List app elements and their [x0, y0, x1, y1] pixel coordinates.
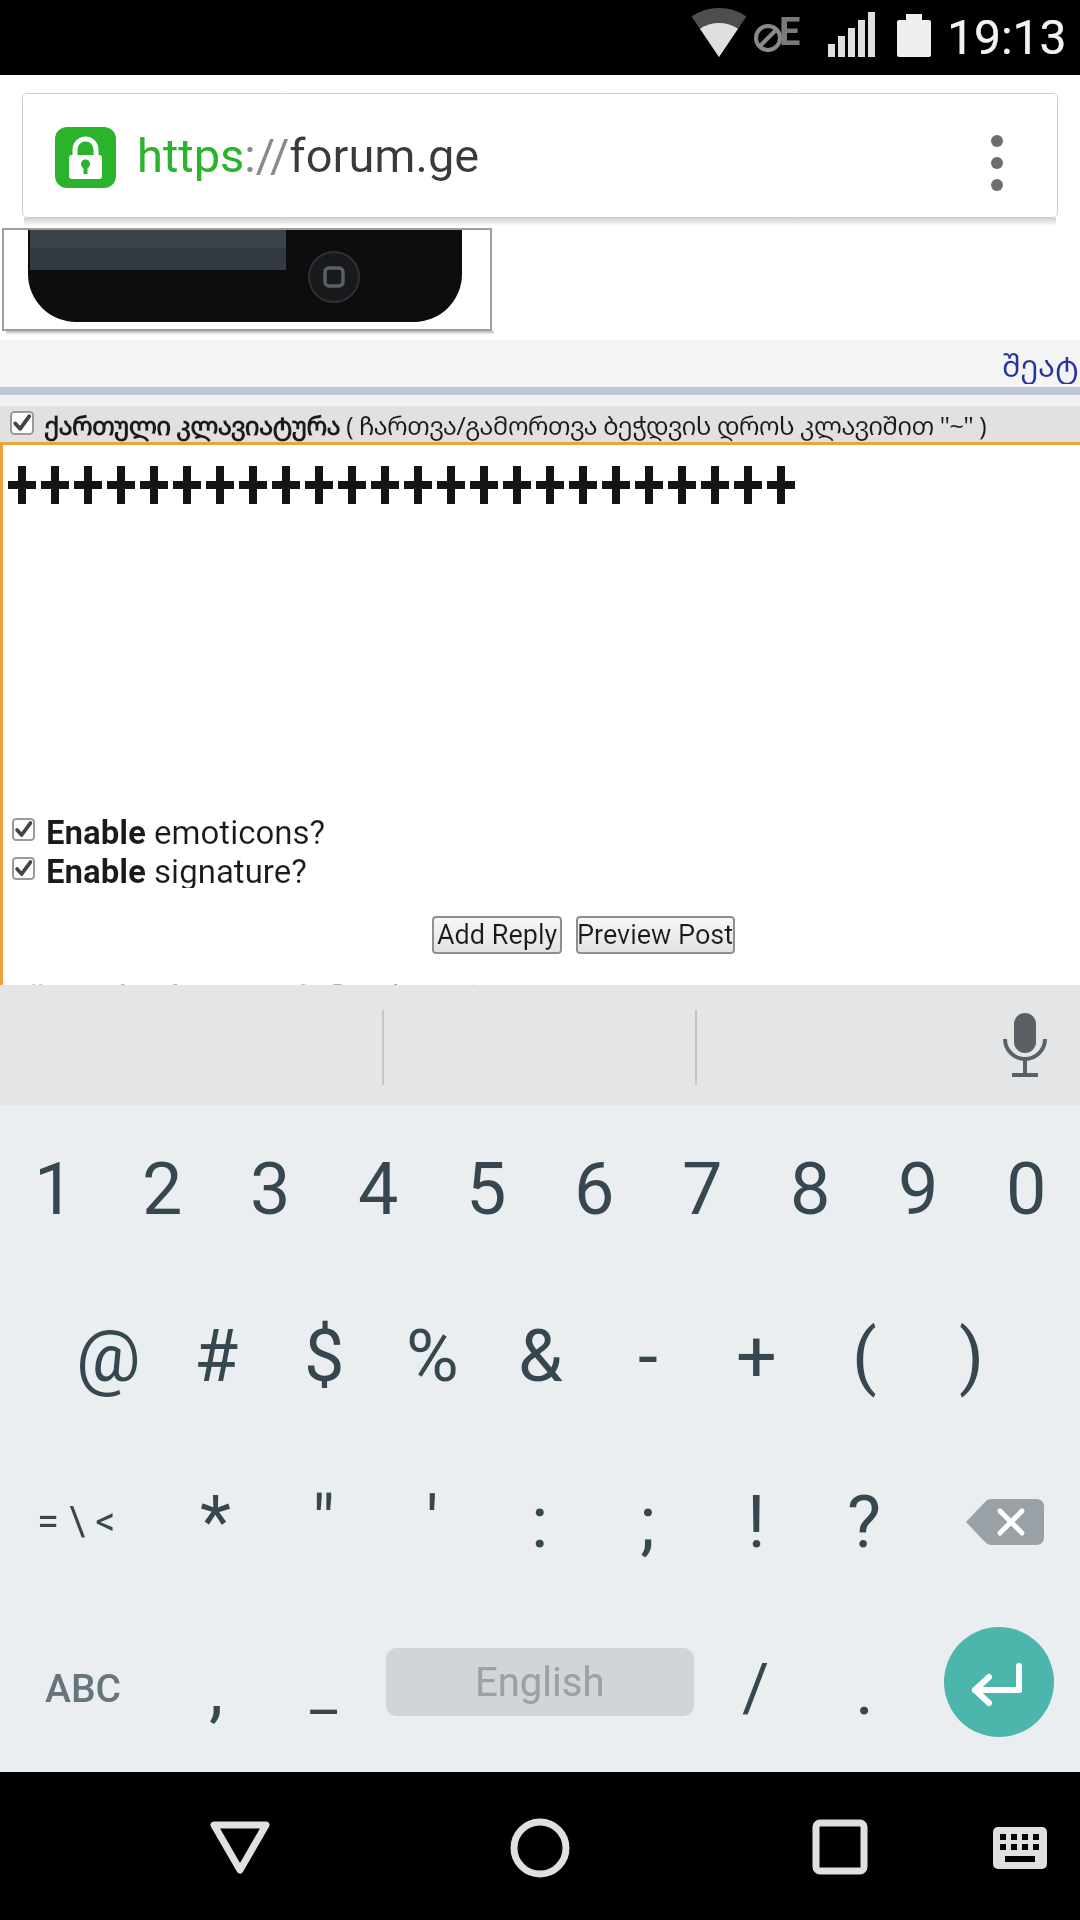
staticText: - [638, 1314, 658, 1398]
button[interactable]: 4 [324, 1105, 432, 1272]
staticText: ) [959, 1314, 985, 1398]
button[interactable]: $ [270, 1272, 378, 1439]
button[interactable]: : [486, 1438, 594, 1605]
staticText: ' [426, 1480, 439, 1564]
staticText: 7 [682, 1147, 723, 1231]
button[interactable]: 5 [432, 1105, 540, 1272]
staticText: ! [747, 1480, 766, 1564]
button[interactable]: 1 [0, 1105, 108, 1272]
staticText: * [200, 1480, 232, 1564]
button[interactable]: . [810, 1605, 918, 1772]
button[interactable] [967, 113, 1037, 198]
button[interactable]: ' [378, 1438, 486, 1605]
staticText: 5 [466, 1147, 507, 1231]
button[interactable]: & [486, 1272, 594, 1439]
button[interactable]: 3 [216, 1105, 324, 1272]
button[interactable]: ) [918, 1272, 1026, 1439]
button[interactable] [780, 1792, 900, 1900]
staticText: ABC [45, 1666, 122, 1712]
staticText: 2 [142, 1147, 183, 1231]
button[interactable] [975, 1807, 1065, 1882]
staticText: 8 [790, 1147, 831, 1231]
staticText: 3 [250, 1147, 291, 1231]
staticText: _ [310, 1654, 338, 1724]
staticText: / [742, 1650, 770, 1727]
button[interactable]: 8 [756, 1105, 864, 1272]
button[interactable]: https://forum.ge [22, 93, 1058, 218]
staticText: ქართული კლავიატურა ( ჩართვა/გამორთვა ბეჭ… [44, 407, 987, 442]
button[interactable]: 6 [540, 1105, 648, 1272]
button[interactable]: ? [810, 1438, 918, 1605]
staticText: ( [852, 1314, 877, 1398]
staticText: Add Reply [437, 919, 558, 951]
button[interactable]: Add Reply [432, 916, 562, 954]
staticText: https://forum.ge [137, 128, 480, 183]
button[interactable]: English [386, 1648, 694, 1716]
button[interactable]: 2 [108, 1105, 216, 1272]
staticText: . [855, 1647, 874, 1731]
button[interactable]: Preview Post [576, 916, 735, 954]
button[interactable]: @ [54, 1272, 162, 1439]
button[interactable] [10, 411, 34, 435]
staticText: 1 [34, 1147, 75, 1231]
button[interactable] [480, 1792, 600, 1900]
button[interactable]: # [162, 1272, 270, 1439]
button[interactable] [944, 1627, 1054, 1737]
staticText: ; [640, 1480, 656, 1564]
button[interactable]: + [702, 1272, 810, 1439]
button[interactable]: ( [810, 1272, 918, 1439]
staticText: შეატყობ [1002, 344, 1080, 384]
staticText: @ [76, 1314, 141, 1398]
button[interactable]: 7 [648, 1105, 756, 1272]
staticText: 4 [358, 1147, 399, 1231]
button[interactable]: ABC [0, 1605, 166, 1772]
button[interactable]: 0 [972, 1105, 1080, 1272]
staticText: ? [847, 1480, 882, 1564]
staticText: # [194, 1314, 239, 1398]
staticText: + [736, 1314, 777, 1398]
button[interactable]: % [378, 1272, 486, 1439]
staticText: 6 [574, 1147, 615, 1231]
staticText: 0 [1006, 1147, 1047, 1231]
staticText: = \ < [37, 1498, 116, 1545]
staticText: შეკითხვები და კომენტარი თემაზე [30, 976, 475, 985]
button[interactable]: / [702, 1605, 810, 1772]
button[interactable] [930, 1438, 1080, 1605]
staticText: Enable emoticons? [46, 813, 326, 849]
button[interactable]: ; [594, 1438, 702, 1605]
button[interactable]: 9 [864, 1105, 972, 1272]
staticText: English [475, 1659, 605, 1706]
staticText: Preview Post [577, 919, 734, 951]
button[interactable]: * [162, 1438, 270, 1605]
staticText: & [518, 1314, 563, 1398]
staticText: " [312, 1480, 336, 1564]
button[interactable]: - [594, 1272, 702, 1439]
button[interactable]: , [162, 1605, 270, 1772]
button[interactable] [180, 1792, 300, 1900]
button[interactable] [12, 857, 35, 880]
staticText: Enable signature? [46, 852, 307, 888]
staticText: $ [304, 1314, 345, 1398]
staticText: , [209, 1647, 224, 1731]
button[interactable]: " [270, 1438, 378, 1605]
button[interactable]: ! [702, 1438, 810, 1605]
staticText: 19:13 [947, 9, 1067, 65]
staticText: % [406, 1314, 459, 1398]
staticText: E [779, 10, 801, 54]
staticText: 9 [898, 1147, 939, 1231]
button[interactable]: = \ < [0, 1438, 152, 1605]
button[interactable]: _ [270, 1605, 378, 1772]
button[interactable] [12, 818, 35, 841]
staticText: : [531, 1480, 549, 1564]
